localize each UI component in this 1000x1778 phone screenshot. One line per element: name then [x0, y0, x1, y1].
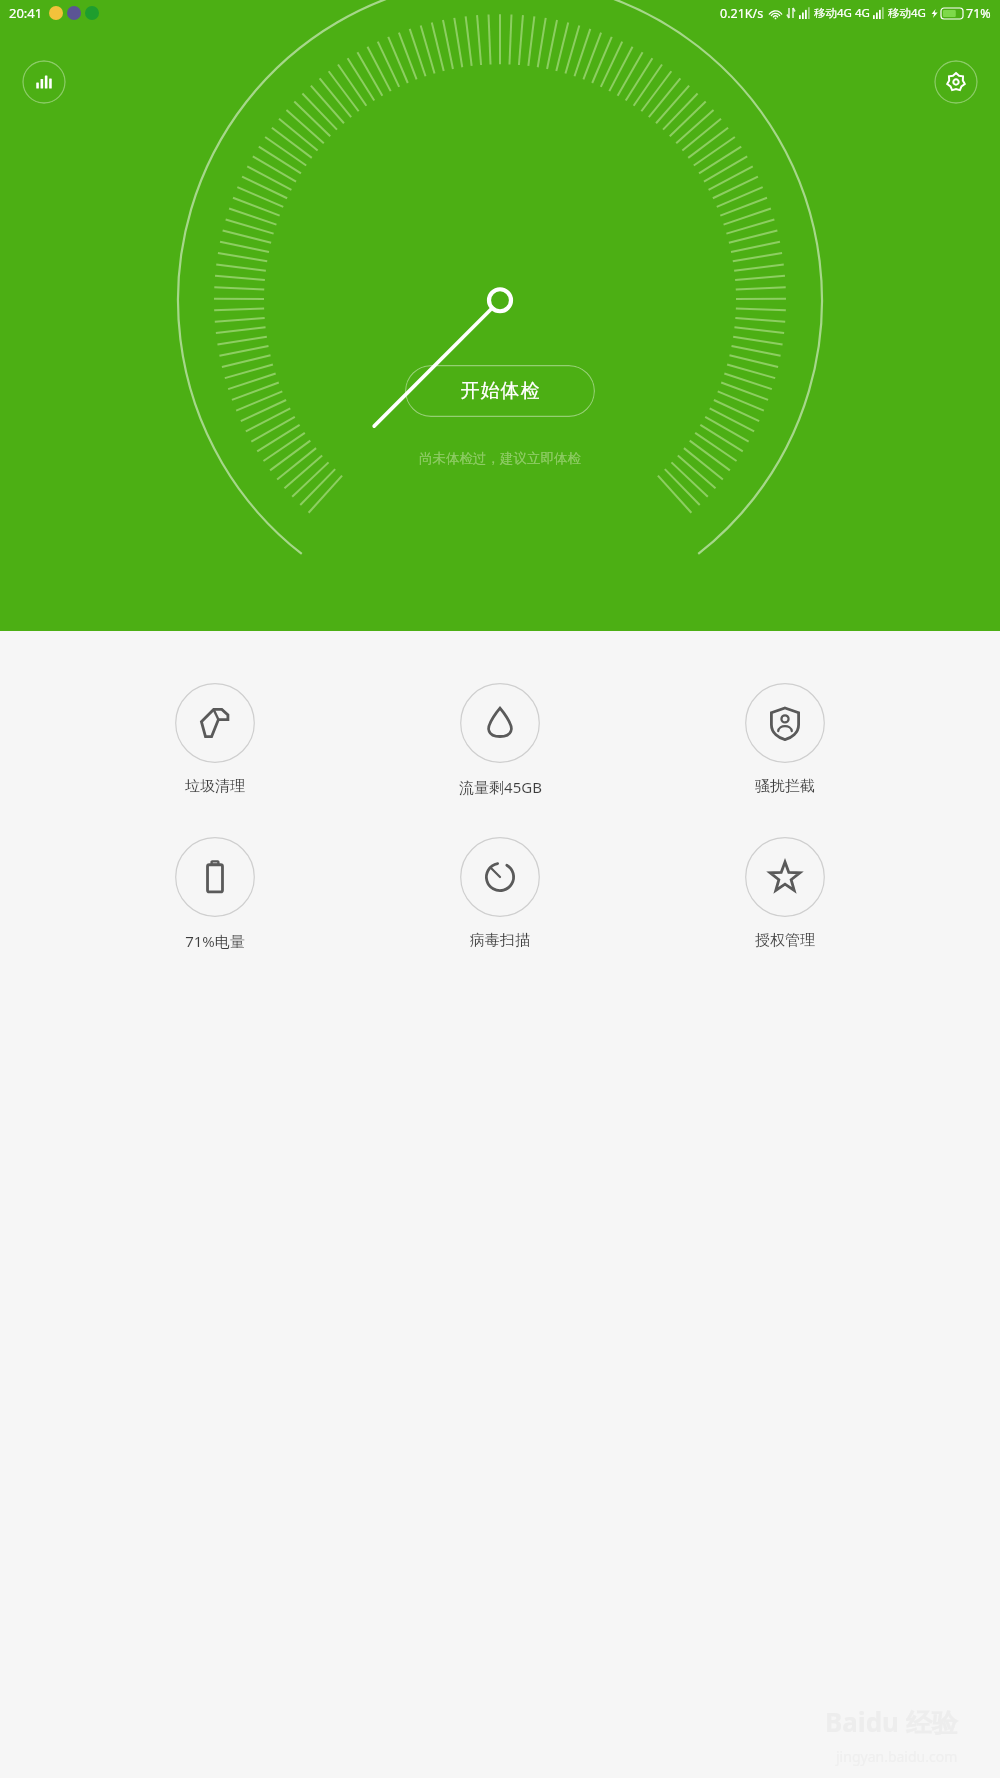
- button[interactable]: 病毒扫描: [430, 833, 570, 954]
- button[interactable]: 垃圾清理: [145, 679, 285, 800]
- staticText: 4G: [855, 5, 870, 21]
- staticText: 71%电量: [185, 931, 245, 951]
- button[interactable]: Settings: [934, 60, 978, 104]
- staticText: 71%: [966, 5, 991, 22]
- staticText: 20:41: [9, 4, 43, 22]
- staticText: 移动4G: [888, 5, 926, 21]
- staticText: Baidu 经验: [825, 1704, 958, 1740]
- button[interactable]: 授权管理: [715, 833, 855, 954]
- staticText: 垃圾清理: [185, 777, 245, 796]
- button[interactable]: 71%电量: [145, 833, 285, 955]
- staticText: 0.21K/s: [720, 5, 764, 22]
- button[interactable]: 开始体检: [405, 365, 595, 417]
- staticText: 开始体检: [460, 379, 540, 403]
- button[interactable]: 流量剩45GB: [430, 679, 570, 801]
- button[interactable]: 骚扰拦截: [715, 679, 855, 800]
- button[interactable]: Usage statistics: [22, 60, 66, 104]
- staticText: 病毒扫描: [470, 931, 530, 950]
- staticText: 授权管理: [755, 931, 815, 950]
- staticText: 流量剩45GB: [459, 777, 542, 797]
- staticText: 尚未体检过，建议立即体检: [419, 450, 581, 467]
- staticText: 骚扰拦截: [755, 777, 815, 796]
- staticText: 移动4G: [814, 5, 852, 21]
